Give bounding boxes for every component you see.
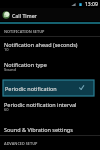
staticText: 10 (4, 47, 9, 52)
button[interactable]: Periodic notification interval (0, 101, 100, 119)
button[interactable]: ADVANCED SETUP (4, 141, 38, 146)
other: Periodic notification checkbox (78, 84, 85, 91)
staticText: Sound (4, 67, 17, 72)
staticText: Periodic notification (5, 85, 57, 92)
button[interactable]: Notification ahead (seconds) (0, 41, 100, 59)
button[interactable]: NOTIFICATION SETUP (4, 29, 45, 34)
button[interactable]: Call Timer (0, 8, 100, 21)
staticText: Notification ahead (seconds) (4, 41, 78, 48)
button[interactable]: Periodic notification (3, 80, 94, 96)
staticText: 13:09 (85, 1, 98, 8)
staticText: Sound & Vibration settings (4, 126, 73, 133)
staticText: Periodic notification interval (4, 101, 77, 108)
staticText: Call Timer (12, 12, 37, 19)
button[interactable]: Notification type (0, 61, 100, 79)
staticText: 60 (4, 107, 9, 112)
staticText: ADVANCED SETUP (4, 141, 38, 146)
staticText: NOTIFICATION SETUP (4, 29, 45, 34)
button[interactable]: Sound & Vibration settings (0, 126, 100, 137)
staticText: Notification type (4, 61, 47, 68)
